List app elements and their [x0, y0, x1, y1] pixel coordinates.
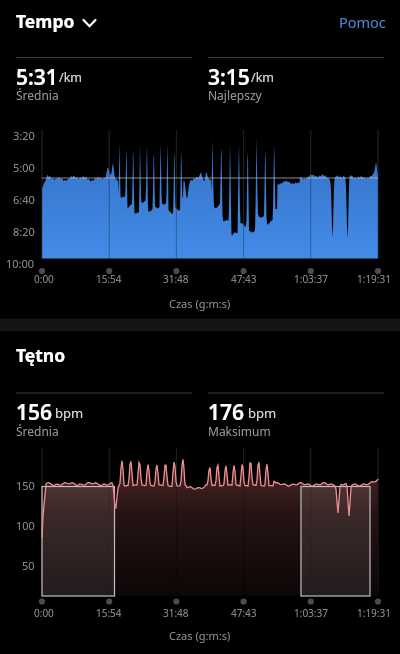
- button[interactable]: Pomoc: [330, 9, 386, 35]
- staticText: Pomoc: [339, 12, 386, 32]
- staticText: 100: [16, 518, 35, 533]
- staticText: 5:31: [16, 63, 58, 92]
- staticText: 10:00: [6, 256, 35, 271]
- staticText: Najlepszy: [208, 87, 262, 103]
- staticText: 47:43: [231, 606, 257, 620]
- staticText: 176: [208, 398, 245, 427]
- staticText: 47:43: [231, 272, 257, 286]
- staticText: /km: [251, 69, 275, 86]
- staticText: 31:48: [163, 606, 189, 620]
- staticText: bpm: [248, 404, 277, 422]
- staticText: 3:15: [208, 63, 250, 92]
- staticText: 0:00: [34, 272, 54, 286]
- staticText: 15:54: [96, 606, 122, 620]
- staticText: Średnia: [16, 423, 59, 439]
- staticText: 0:00: [34, 606, 54, 620]
- staticText: bpm: [55, 404, 84, 422]
- staticText: 6:40: [13, 192, 35, 207]
- button[interactable]: Tempo: [16, 9, 88, 33]
- staticText: 1:19:31: [357, 606, 391, 620]
- staticText: 1:03:37: [294, 272, 328, 286]
- staticText: 156: [16, 398, 53, 427]
- staticText: 5:00: [13, 160, 35, 175]
- staticText: 15:54: [96, 272, 122, 286]
- staticText: Maksimum: [208, 423, 271, 439]
- staticText: 31:48: [163, 272, 189, 286]
- staticText: 3:20: [13, 128, 35, 143]
- staticText: 1:03:37: [294, 606, 328, 620]
- staticText: /km: [59, 69, 83, 86]
- staticText: Tętno: [16, 343, 66, 367]
- staticText: Czas (g:m:s): [169, 296, 231, 311]
- staticText: Średnia: [16, 87, 59, 103]
- staticText: 150: [16, 478, 35, 493]
- staticText: Tempo: [16, 9, 75, 33]
- staticText: 50: [22, 558, 35, 573]
- staticText: Czas (g:m:s): [169, 628, 231, 643]
- staticText: 1:19:31: [357, 272, 391, 286]
- staticText: 8:20: [13, 224, 35, 239]
